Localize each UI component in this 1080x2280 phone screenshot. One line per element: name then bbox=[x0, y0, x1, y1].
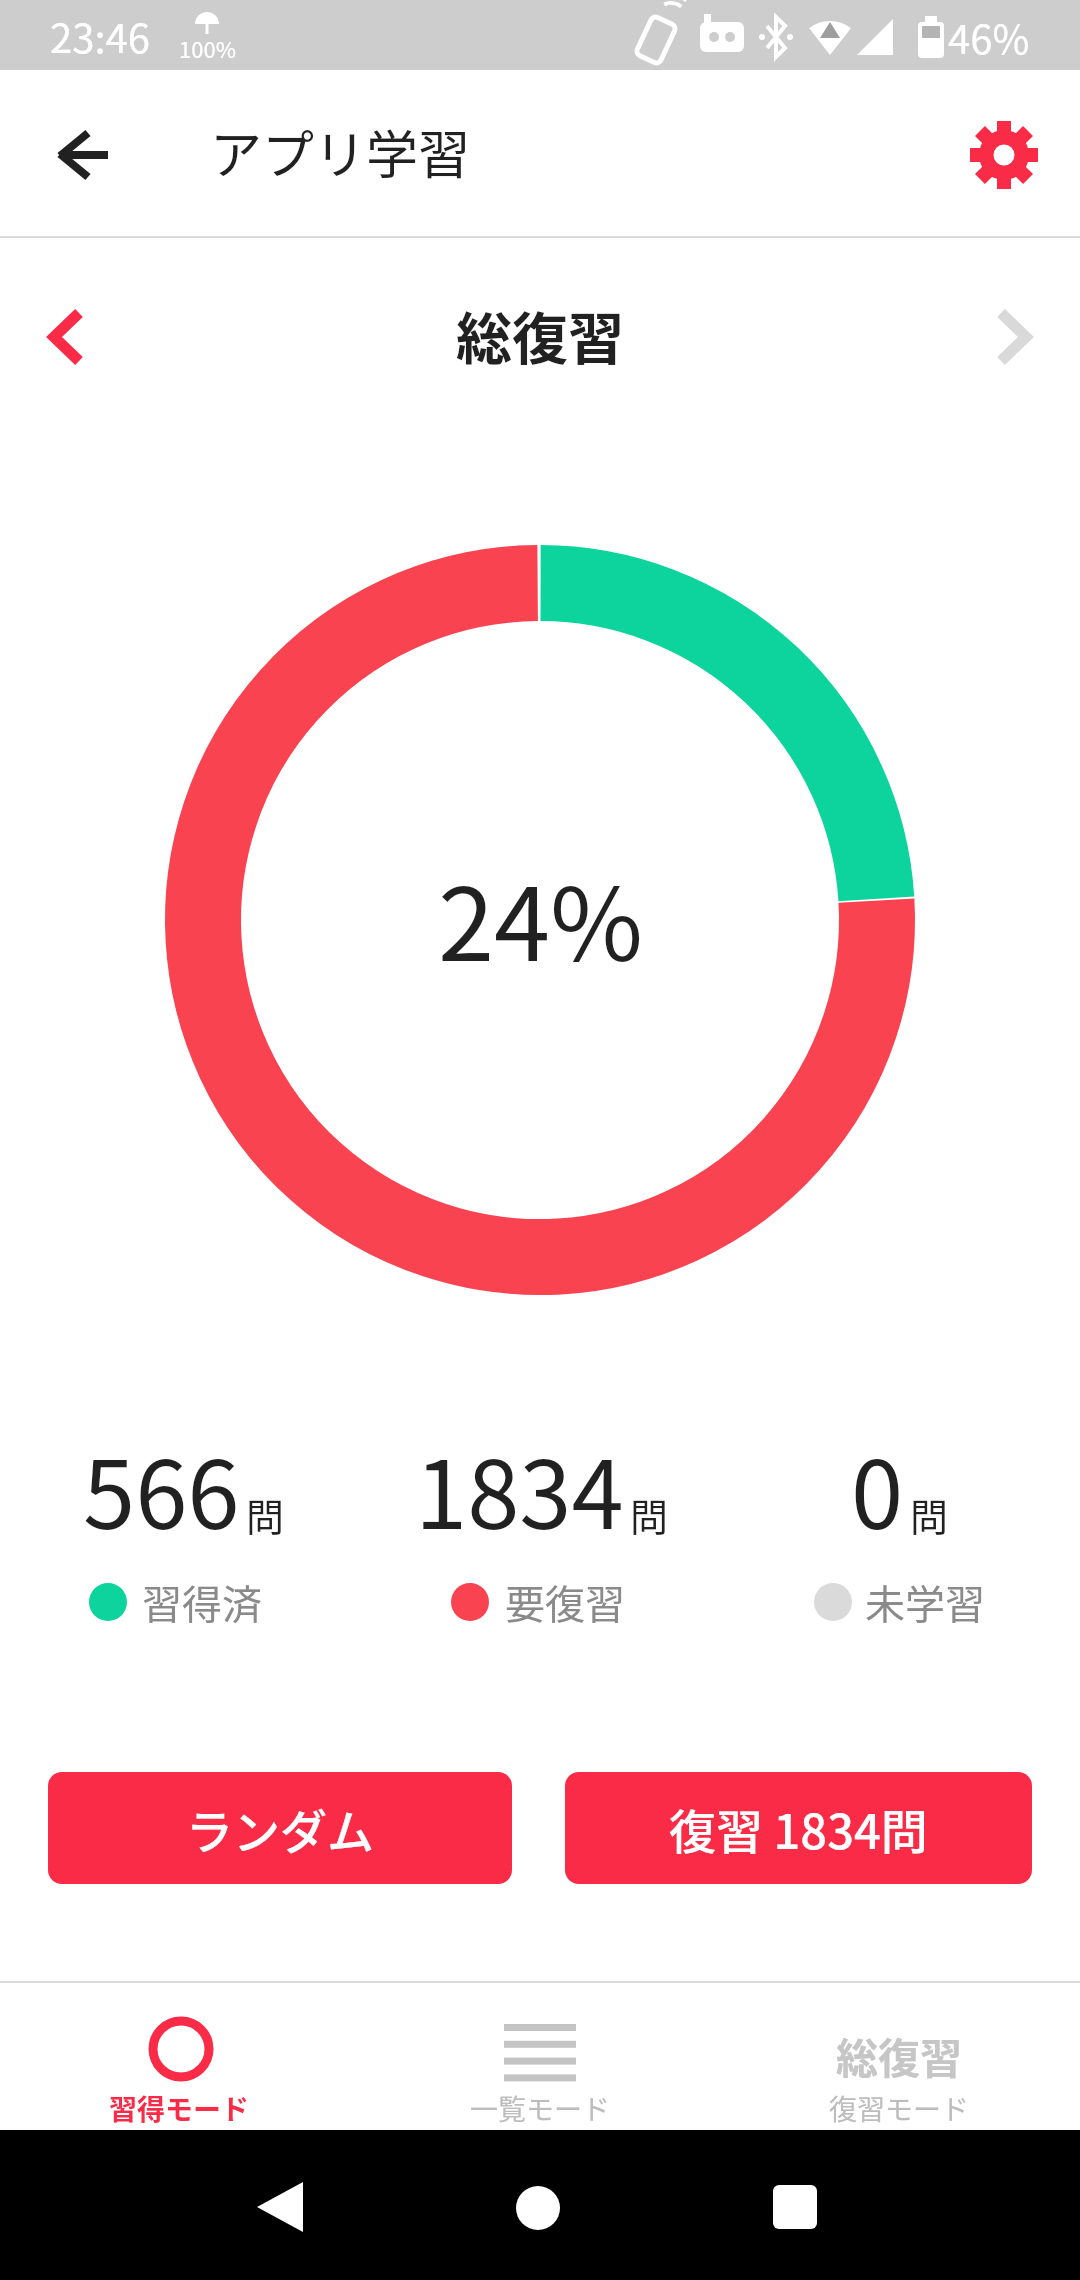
staticText: 1834 bbox=[415, 1420, 624, 1556]
button[interactable] bbox=[780, 1983, 1020, 2130]
staticText: 総復習 bbox=[836, 2025, 963, 2086]
staticText: 24% bbox=[438, 844, 644, 990]
staticText: ランダム bbox=[186, 1794, 374, 1862]
button[interactable] bbox=[230, 2160, 330, 2260]
staticText: 未学習 bbox=[865, 1573, 985, 1631]
button[interactable] bbox=[60, 1983, 300, 2130]
staticText: 23:46 bbox=[50, 7, 150, 65]
staticText: 566 bbox=[83, 1420, 240, 1556]
staticText: 要復習 bbox=[505, 1573, 625, 1631]
staticText: 0 bbox=[851, 1420, 904, 1556]
staticText: 習得モード bbox=[109, 2088, 250, 2129]
staticText: 復習モード bbox=[829, 2088, 970, 2129]
staticText: 習得済 bbox=[142, 1573, 262, 1631]
button[interactable] bbox=[960, 111, 1048, 199]
staticText: 復習 1834問 bbox=[669, 1794, 928, 1862]
staticText: 総復習 bbox=[456, 294, 624, 375]
staticText: アプリ学習 bbox=[210, 114, 471, 189]
button[interactable]: ランダム bbox=[48, 1772, 512, 1884]
button[interactable] bbox=[40, 111, 128, 199]
button[interactable] bbox=[745, 2160, 845, 2260]
staticText: 一覧モード bbox=[470, 2088, 611, 2129]
staticText: 問 bbox=[910, 1487, 949, 1542]
button[interactable] bbox=[420, 1983, 660, 2130]
staticText: 100% bbox=[179, 32, 236, 64]
staticText: 問 bbox=[630, 1487, 669, 1542]
button[interactable] bbox=[970, 292, 1060, 382]
staticText: 問 bbox=[246, 1487, 285, 1542]
staticText: 46% bbox=[948, 8, 1030, 66]
button[interactable] bbox=[20, 292, 110, 382]
button[interactable]: 復習 1834問 bbox=[565, 1772, 1032, 1884]
button[interactable] bbox=[490, 2160, 590, 2260]
